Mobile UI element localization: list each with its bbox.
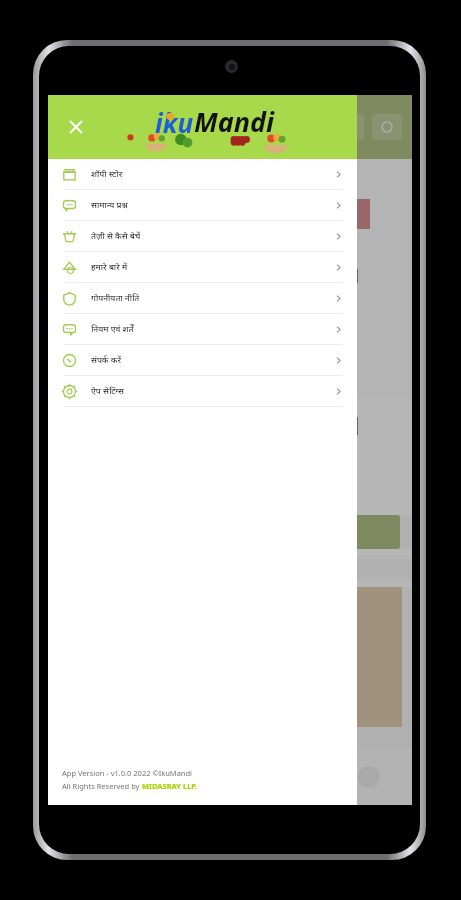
staticText: संपर्क करें [91,354,121,366]
staticText: हमारे बारे में [91,261,128,273]
button[interactable]: शॉपी स्टोर [48,159,357,189]
staticText: सामान्य प्रश्न [91,199,128,211]
button[interactable]: ऐप सेटिंग्स [48,376,357,406]
button[interactable]: Close menu [62,113,90,141]
staticText: All Rights Reserved by [62,781,142,791]
staticText: शॉपी स्टोर [91,168,123,180]
button[interactable]: Profile [358,766,380,788]
staticText: ऐप सेटिंग्स [91,385,124,397]
staticText: App Version - v1.0.0 2022 ©IkuMandi [62,768,193,778]
staticText: MIDASRAY LLP. [142,781,198,791]
staticText: नियम एवं शर्तें [91,323,134,335]
button[interactable]: Refresh [372,114,402,140]
button[interactable]: गोपनीयता नीति [48,283,357,313]
button[interactable] [60,515,400,549]
staticText: Mandi [194,103,275,140]
button[interactable]: हमारे बारे में [48,252,357,282]
staticText: तेज़ी से कैसे बेचें [91,230,141,242]
button[interactable]: तेज़ी से कैसे बेचें [48,221,357,251]
staticText: गोपनीयता नीति [91,292,140,304]
button[interactable]: Menu [334,114,364,140]
staticText: iku [155,105,194,140]
button[interactable]: सामान्य प्रश्न [48,190,357,220]
button[interactable]: नियम एवं शर्तें [48,314,357,344]
button[interactable]: संपर्क करें [48,345,357,375]
